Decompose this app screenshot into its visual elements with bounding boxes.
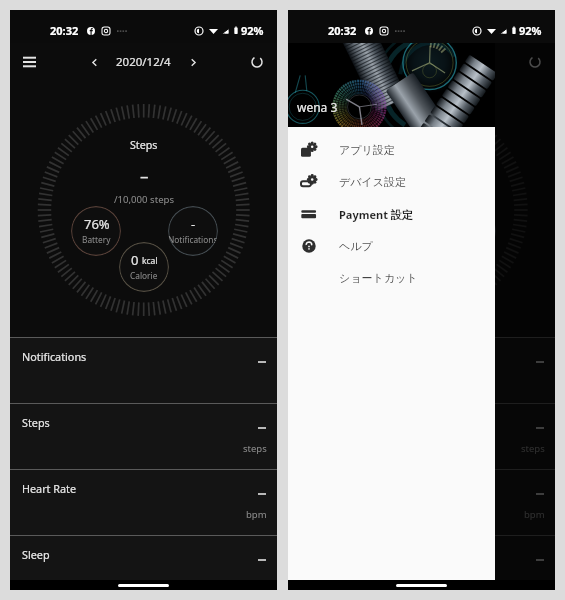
staticText: -	[191, 215, 196, 233]
staticText: Steps	[22, 415, 50, 430]
button[interactable]: Sleep	[10, 536, 277, 590]
button[interactable]: Heart Rate	[10, 470, 277, 535]
button[interactable]: Previous day	[359, 49, 385, 75]
staticText: Heart Rate	[22, 481, 77, 496]
button[interactable]: 76%	[349, 206, 399, 256]
staticText: steps	[243, 442, 267, 455]
button[interactable]: ヘルプ	[288, 230, 495, 262]
button[interactable]: Heart Rate	[288, 470, 555, 535]
staticText: Battery	[360, 234, 389, 245]
button[interactable]: Sleep	[288, 536, 555, 590]
staticText: 92%	[241, 23, 264, 38]
staticText: bpm	[524, 508, 545, 521]
staticText: 0	[131, 251, 139, 269]
staticText: –	[140, 164, 149, 187]
button[interactable]: 0	[119, 242, 169, 292]
staticText: Calorie	[130, 270, 158, 281]
staticText: bpm	[246, 508, 267, 521]
staticText: steps	[521, 442, 545, 455]
button[interactable]: ショートカット	[288, 262, 495, 294]
staticText: /10,000 steps	[114, 193, 175, 206]
button[interactable]: Notifications	[288, 338, 555, 403]
button[interactable]: Previous day	[81, 49, 107, 75]
button[interactable]: 76%	[71, 206, 121, 256]
staticText: kcal	[142, 255, 158, 267]
button[interactable]: Steps	[10, 404, 277, 469]
staticText: ヘルプ	[339, 239, 373, 253]
staticText: 2020/12/4	[394, 54, 449, 70]
button[interactable]: -	[168, 206, 218, 256]
button[interactable]: -	[446, 206, 496, 256]
staticText: wena 3	[297, 99, 338, 115]
staticText: 76%	[84, 215, 110, 233]
button[interactable]: Sync	[245, 50, 269, 74]
button[interactable]: 0	[397, 242, 447, 292]
staticText: Sleep	[22, 547, 50, 562]
staticText: ショートカット	[339, 271, 418, 285]
staticText: Battery	[82, 234, 111, 245]
staticText: デバイス設定	[339, 175, 407, 189]
staticText: Notifications	[168, 234, 218, 245]
staticText: Steps	[130, 138, 158, 153]
staticText: アプリ設定	[339, 143, 395, 157]
button[interactable]: Notifications	[10, 338, 277, 403]
staticText: Payment 設定	[339, 207, 413, 222]
staticText: 92%	[519, 23, 542, 38]
button[interactable]: Next day	[180, 49, 206, 75]
button[interactable]: Next day	[458, 49, 484, 75]
staticText: Calorie	[408, 270, 436, 281]
staticText: Notifications	[22, 349, 87, 364]
button[interactable]: Payment 設定	[288, 198, 495, 230]
staticText: 2020/12/4	[116, 54, 171, 70]
staticText: Notifications	[446, 234, 496, 245]
button[interactable]: アプリ設定	[288, 134, 495, 166]
button[interactable]: デバイス設定	[288, 166, 495, 198]
button[interactable]: Steps	[288, 404, 555, 469]
staticText: 20:32	[50, 23, 79, 38]
staticText: 76%	[362, 215, 388, 233]
staticText: 20:32	[328, 23, 357, 38]
button[interactable]: Sync	[523, 50, 547, 74]
button[interactable]: Menu	[16, 49, 42, 75]
